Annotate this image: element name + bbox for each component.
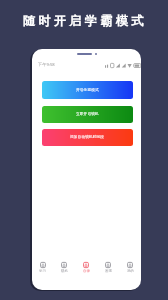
- button[interactable]: 锁机: [53, 262, 75, 273]
- staticText: 学习: [39, 269, 46, 273]
- staticText: 锁机: [61, 269, 68, 273]
- button[interactable]: 添加自动锁机时间段: [42, 129, 133, 146]
- staticText: 随时开启学霸模式: [21, 13, 145, 28]
- button[interactable]: 发现: [97, 262, 119, 273]
- staticText: 开启学霸模式: [76, 88, 99, 93]
- button[interactable]: 立即开启锁机: [42, 106, 133, 123]
- staticText: 添加自动锁机时间段: [70, 135, 105, 140]
- staticText: 自律: [83, 269, 90, 273]
- staticText: 我的: [127, 269, 134, 273]
- button[interactable]: 开启学霸模式: [42, 81, 133, 99]
- button[interactable]: 我的: [119, 262, 141, 273]
- staticText: 立即开启锁机: [76, 112, 99, 117]
- button[interactable]: 学习: [32, 262, 53, 273]
- button[interactable]: 自律: [75, 262, 97, 273]
- staticText: 下午9:58: [38, 62, 55, 68]
- staticText: 发现: [105, 269, 112, 273]
